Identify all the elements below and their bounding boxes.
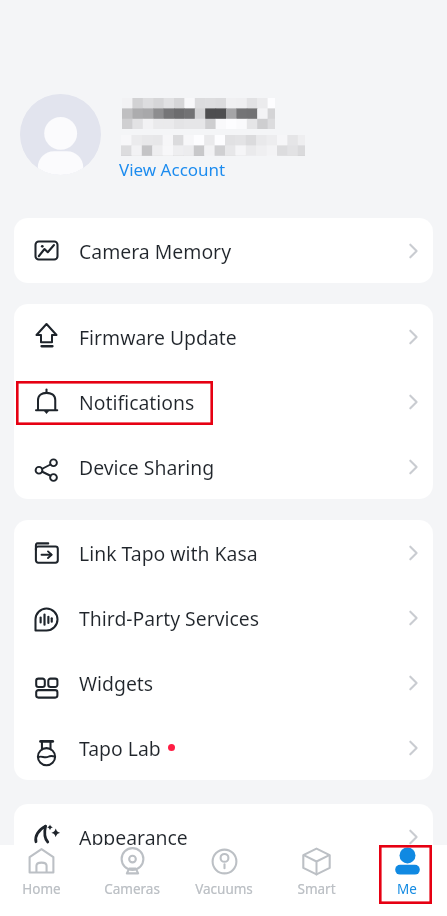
button[interactable]: Device Sharing [14, 434, 433, 499]
staticText: Me [397, 880, 417, 898]
staticText: Device Sharing [79, 454, 215, 480]
staticText: Notifications [79, 389, 195, 415]
button[interactable]: Notifications [14, 369, 433, 434]
staticText: Tapo Lab [79, 735, 161, 761]
button[interactable]: Cameras [94, 847, 170, 898]
staticText: Widgets [79, 670, 154, 696]
staticText: Appearance [79, 824, 188, 850]
button[interactable]: Link Tapo with Kasa [14, 520, 433, 585]
button[interactable]: Home [3, 847, 79, 898]
button[interactable]: Me [369, 847, 445, 898]
staticText: Third-Party Services [79, 605, 260, 631]
button[interactable]: Third-Party Services [14, 585, 433, 650]
button[interactable]: Appearance [14, 804, 433, 869]
staticText: Firmware Update [79, 324, 237, 350]
staticText: Cameras [104, 880, 160, 898]
button[interactable]: Vacuums [186, 847, 262, 898]
staticText: Vacuums [195, 880, 253, 898]
staticText: Camera Memory [79, 238, 232, 264]
button[interactable]: Camera Memory [14, 218, 433, 283]
button[interactable]: Tapo Lab [14, 715, 433, 780]
button[interactable]: Firmware Update [14, 304, 433, 369]
button[interactable]: View Account [119, 158, 226, 181]
button[interactable]: Smart [278, 847, 354, 898]
staticText: Smart [297, 880, 336, 898]
staticText: Home [22, 880, 61, 898]
button[interactable]: Profile picture [20, 94, 101, 175]
button[interactable]: Widgets [14, 650, 433, 715]
staticText: Link Tapo with Kasa [79, 540, 258, 566]
staticText: View Account [119, 158, 226, 181]
